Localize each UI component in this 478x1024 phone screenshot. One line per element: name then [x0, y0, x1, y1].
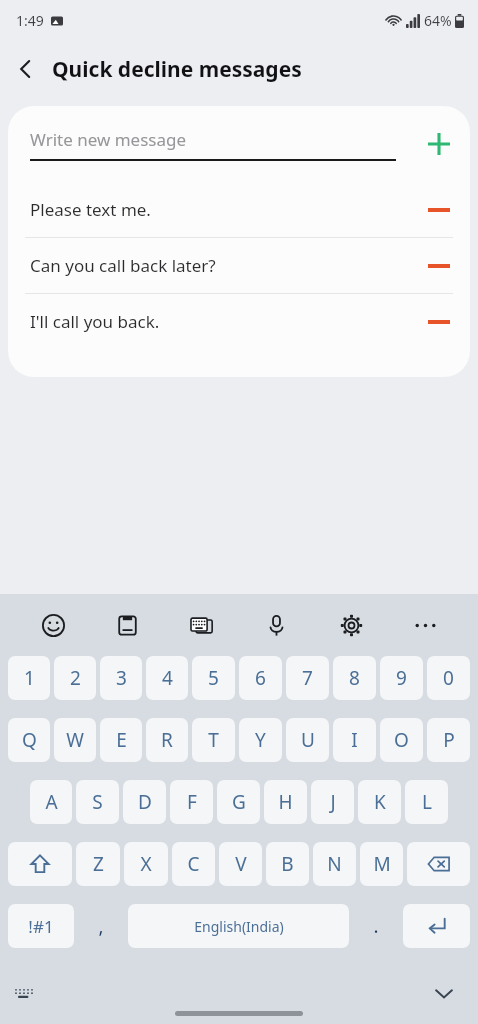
staticText: 64% — [424, 11, 452, 30]
staticText: E — [116, 727, 127, 753]
button[interactable]: P — [427, 718, 470, 762]
button[interactable]: L — [405, 780, 448, 824]
button[interactable]: I'll call you back. — [8, 294, 470, 349]
staticText: English(India) — [194, 917, 284, 936]
button[interactable]: D — [123, 780, 166, 824]
button[interactable]: M — [360, 842, 403, 886]
button[interactable]: G — [217, 780, 260, 824]
button[interactable]: Remove message — [408, 182, 470, 237]
button[interactable]: X — [124, 842, 168, 886]
staticText: I — [351, 727, 358, 753]
button[interactable]: Write new message — [8, 106, 470, 182]
button[interactable]: U — [286, 718, 329, 762]
staticText: D — [138, 789, 152, 815]
button[interactable]: B — [266, 842, 309, 886]
button[interactable]: Remove message — [408, 294, 470, 349]
button[interactable]: 4 — [146, 656, 188, 700]
staticText: Can you call back later? — [30, 254, 396, 277]
button[interactable]: 2 — [54, 656, 96, 700]
staticText: F — [187, 789, 197, 815]
button[interactable]: E — [100, 718, 142, 762]
button[interactable]: W — [54, 718, 96, 762]
button[interactable]: Y — [239, 718, 282, 762]
staticText: G — [232, 789, 246, 815]
staticText: O — [394, 727, 409, 753]
staticText: W — [66, 727, 84, 753]
button[interactable]: Z — [76, 842, 120, 886]
staticText: 6 — [255, 665, 266, 691]
staticText: Please text me. — [30, 198, 396, 221]
button[interactable]: Add message — [408, 113, 470, 175]
staticText: Quick decline messages — [52, 55, 302, 84]
button[interactable]: Clipboard — [105, 603, 149, 647]
button[interactable]: O — [380, 718, 423, 762]
staticText: M — [373, 851, 391, 877]
button[interactable]: !#1 — [8, 904, 74, 948]
staticText: T — [208, 727, 219, 753]
staticText: R — [161, 727, 173, 753]
staticText: A — [45, 789, 58, 815]
staticText: X — [140, 851, 152, 877]
button[interactable]: 0 — [427, 656, 470, 700]
button[interactable]: C — [172, 842, 215, 886]
staticText: Y — [255, 727, 266, 753]
button[interactable]: English(India) — [128, 904, 349, 948]
staticText: B — [281, 851, 294, 877]
button[interactable]: Settings — [329, 603, 373, 647]
staticText: V — [235, 851, 247, 877]
button[interactable]: 7 — [286, 656, 329, 700]
staticText: Write new message — [30, 128, 187, 151]
button[interactable]: Voice input — [254, 603, 298, 647]
button[interactable]: Shift — [8, 842, 72, 886]
button[interactable]: Remove message — [408, 238, 470, 293]
button[interactable]: K — [358, 780, 401, 824]
button[interactable]: T — [192, 718, 235, 762]
button[interactable]: S — [76, 780, 119, 824]
staticText: J — [330, 789, 336, 815]
button[interactable]: F — [170, 780, 213, 824]
staticText: 7 — [302, 665, 313, 691]
button[interactable]: 6 — [239, 656, 282, 700]
button[interactable]: More options — [403, 603, 447, 647]
button[interactable]: N — [313, 842, 356, 886]
button[interactable]: Hide keyboard — [424, 973, 464, 1013]
staticText: 1:49 — [16, 11, 44, 30]
button[interactable]: Can you call back later? — [8, 238, 470, 293]
button[interactable]: Enter — [403, 904, 470, 948]
staticText: 0 — [443, 665, 454, 691]
staticText: L — [422, 789, 432, 815]
staticText: Z — [93, 851, 104, 877]
button[interactable]: Emoji — [31, 603, 75, 647]
button[interactable]: A — [30, 780, 72, 824]
staticText: 4 — [162, 665, 173, 691]
button[interactable]: Back — [0, 43, 52, 95]
staticText: 8 — [349, 665, 360, 691]
button[interactable]: Please text me. — [8, 182, 470, 237]
staticText: U — [301, 727, 315, 753]
staticText: 1 — [24, 665, 35, 691]
button[interactable]: Keyboard layout — [4, 973, 44, 1013]
button[interactable]: Q — [8, 718, 50, 762]
staticText: P — [443, 727, 455, 753]
button[interactable]: , — [78, 904, 124, 948]
button[interactable]: I — [333, 718, 376, 762]
staticText: 3 — [116, 665, 127, 691]
staticText: 9 — [396, 665, 407, 691]
button[interactable]: 3 — [100, 656, 142, 700]
button[interactable]: 8 — [333, 656, 376, 700]
staticText: K — [374, 789, 386, 815]
staticText: H — [278, 789, 293, 815]
button[interactable]: V — [219, 842, 262, 886]
staticText: C — [187, 851, 200, 877]
button[interactable]: 9 — [380, 656, 423, 700]
button[interactable]: Backspace — [407, 842, 470, 886]
button[interactable]: R — [146, 718, 188, 762]
button[interactable]: 1 — [8, 656, 50, 700]
button[interactable]: Keyboard modes — [180, 603, 224, 647]
staticText: I'll call you back. — [30, 310, 396, 333]
staticText: 5 — [208, 665, 219, 691]
button[interactable]: . — [353, 904, 399, 948]
button[interactable]: H — [264, 780, 307, 824]
button[interactable]: J — [311, 780, 354, 824]
button[interactable]: 5 — [192, 656, 235, 700]
